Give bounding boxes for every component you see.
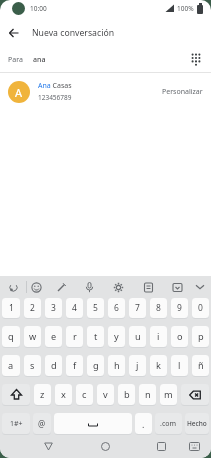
button[interactable]: [188, 52, 204, 68]
staticText: 4: [72, 302, 77, 314]
staticText: k: [156, 359, 161, 372]
button[interactable]: s: [24, 355, 41, 376]
button[interactable]: Personalizar: [162, 87, 203, 97]
button[interactable]: 9: [171, 298, 188, 318]
button[interactable]: m: [160, 384, 177, 405]
button[interactable]: 5: [87, 298, 104, 318]
button[interactable]: t: [87, 326, 104, 347]
staticText: e: [51, 330, 57, 343]
button[interactable]: b: [118, 384, 135, 405]
staticText: 1#+: [10, 419, 23, 429]
button[interactable]: [153, 438, 170, 455]
button[interactable]: r: [66, 326, 83, 347]
staticText: A: [15, 85, 23, 100]
button[interactable]: [166, 276, 188, 298]
button[interactable]: y: [108, 326, 125, 347]
button[interactable]: [107, 276, 129, 298]
staticText: y: [114, 330, 119, 343]
button[interactable]: 8: [150, 298, 167, 318]
staticText: 10:00: [30, 4, 47, 13]
button[interactable]: g: [87, 355, 104, 376]
staticText: q: [8, 330, 14, 343]
staticText: .com: [160, 419, 177, 429]
button[interactable]: n: [139, 384, 156, 405]
staticText: Para: [8, 55, 23, 65]
button[interactable]: w: [24, 326, 41, 347]
staticText: g: [93, 359, 99, 372]
button[interactable]: A: [0, 73, 211, 110]
button[interactable]: [40, 438, 57, 455]
staticText: l: [178, 359, 181, 372]
staticText: u: [135, 330, 141, 343]
staticText: 0: [198, 302, 203, 314]
button[interactable]: 1#+: [2, 413, 30, 434]
staticText: 7: [135, 302, 140, 314]
button[interactable]: z: [34, 384, 51, 405]
button[interactable]: [78, 276, 100, 298]
staticText: 9: [177, 302, 182, 314]
button[interactable]: [2, 384, 30, 405]
button[interactable]: ñ: [192, 355, 209, 376]
staticText: ana: [33, 55, 46, 65]
staticText: @: [38, 418, 46, 429]
staticText: z: [40, 388, 45, 401]
button[interactable]: [50, 276, 72, 298]
staticText: h: [114, 359, 120, 372]
button[interactable]: [181, 384, 209, 405]
staticText: m: [164, 388, 173, 401]
button[interactable]: 4: [66, 298, 83, 318]
button[interactable]: p: [192, 326, 209, 347]
button[interactable]: Hecho: [185, 413, 209, 434]
button[interactable]: 6: [108, 298, 125, 318]
button[interactable]: q: [2, 326, 20, 347]
button[interactable]: h: [108, 355, 125, 376]
button[interactable]: .com: [155, 413, 182, 434]
button[interactable]: v: [97, 384, 114, 405]
button[interactable]: u: [129, 326, 146, 347]
button[interactable]: 7: [129, 298, 146, 318]
staticText: s: [30, 359, 35, 372]
staticText: 123456789: [38, 93, 72, 102]
staticText: x: [61, 388, 66, 401]
staticText: t: [94, 330, 98, 343]
staticText: v: [103, 388, 108, 401]
button[interactable]: @: [33, 413, 51, 434]
staticText: Nueva conversación: [32, 27, 115, 39]
button[interactable]: [25, 276, 47, 298]
staticText: 100%: [177, 4, 194, 13]
button[interactable]: o: [171, 326, 188, 347]
button[interactable]: 3: [45, 298, 62, 318]
button[interactable]: i: [150, 326, 167, 347]
button[interactable]: [54, 413, 132, 434]
button[interactable]: [189, 276, 211, 298]
staticText: 2: [30, 302, 35, 314]
button[interactable]: j: [129, 355, 146, 376]
staticText: r: [73, 330, 77, 343]
button[interactable]: c: [76, 384, 93, 405]
button[interactable]: [186, 438, 203, 455]
button[interactable]: [2, 276, 24, 298]
staticText: 1: [9, 302, 14, 314]
button[interactable]: .: [135, 413, 152, 434]
button[interactable]: e: [45, 326, 62, 347]
button[interactable]: [137, 276, 159, 298]
staticText: i: [157, 330, 160, 343]
button[interactable]: [0, 19, 28, 47]
button[interactable]: 0: [192, 298, 209, 318]
button[interactable]: x: [55, 384, 72, 405]
button[interactable]: f: [66, 355, 83, 376]
button[interactable]: [97, 438, 114, 455]
staticText: b: [124, 388, 130, 401]
staticText: Hecho: [187, 419, 207, 428]
button[interactable]: d: [45, 355, 62, 376]
button[interactable]: a: [2, 355, 20, 376]
staticText: j: [136, 359, 139, 372]
button[interactable]: 1: [2, 298, 20, 318]
staticText: n: [145, 388, 151, 401]
staticText: 5: [93, 302, 98, 314]
button[interactable]: 2: [24, 298, 41, 318]
button[interactable]: k: [150, 355, 167, 376]
staticText: p: [198, 330, 204, 343]
staticText: Ana Casas: [38, 81, 72, 91]
button[interactable]: l: [171, 355, 188, 376]
